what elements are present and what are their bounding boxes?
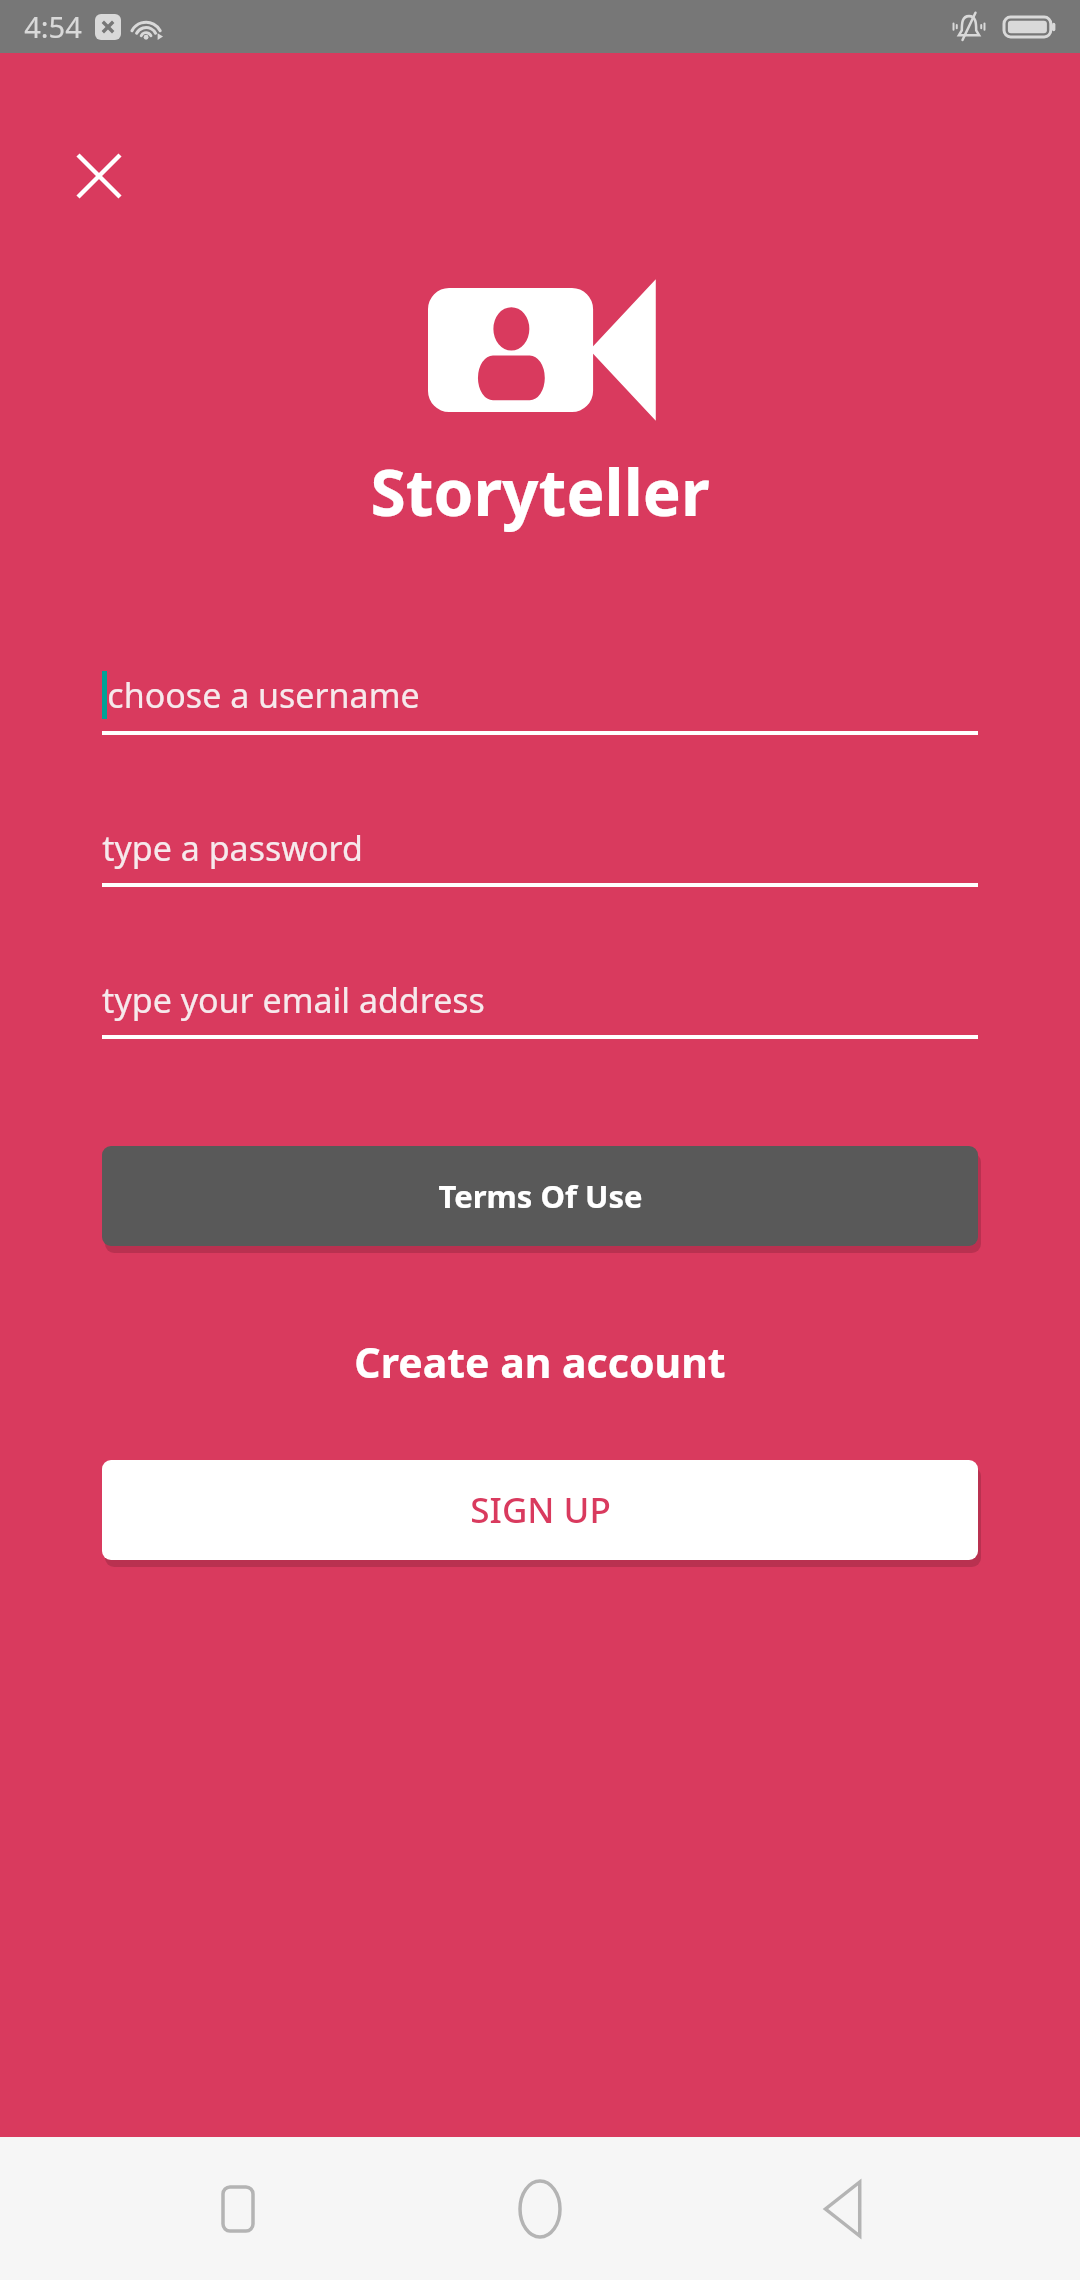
button[interactable]: Close — [64, 141, 134, 211]
staticText: Storyteller — [370, 448, 710, 535]
button[interactable]: SIGN UP — [102, 1460, 978, 1560]
staticText: Terms Of Use — [438, 1175, 643, 1217]
staticText: 4:54 — [24, 7, 82, 46]
staticText: SIGN UP — [470, 1486, 611, 1534]
staticText: type your email address — [102, 977, 485, 1023]
staticText: type a password — [102, 825, 363, 871]
button[interactable]: Terms Of Use — [102, 1146, 978, 1246]
button[interactable]: Home — [475, 2137, 605, 2280]
button[interactable]: Back — [778, 2137, 908, 2280]
staticText: choose a username — [107, 672, 420, 718]
staticText: Create an account — [354, 1334, 726, 1390]
button[interactable]: Recent apps — [173, 2137, 303, 2280]
